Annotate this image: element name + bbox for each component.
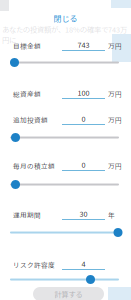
staticText: 毎月の積立額 [13, 161, 55, 171]
staticText: あなたの投資額が、18%の確率で743万円に [2, 24, 127, 45]
staticText: 年 [108, 210, 115, 220]
staticText: 万円 [108, 89, 122, 99]
staticText: 4 [81, 258, 85, 269]
button[interactable]: 計算する [33, 287, 104, 300]
button[interactable]: 閉じる [0, 11, 131, 25]
staticText: 運用期間 [13, 210, 41, 220]
staticText: 総資産額 [13, 89, 41, 99]
staticText: 100 [77, 87, 89, 98]
staticText: 閉じる [53, 12, 77, 24]
staticText: 目標金額 [13, 41, 41, 51]
staticText: 743 [77, 39, 89, 50]
staticText: リスク許容度 [13, 260, 55, 270]
staticText: 万円 [108, 41, 122, 51]
staticText: 30 [79, 208, 87, 219]
staticText: 0 [81, 113, 85, 124]
staticText: 万円 [108, 115, 122, 125]
staticText: 追加投資額 [13, 115, 48, 125]
staticText: 計算する [54, 289, 82, 299]
staticText: 万円 [108, 161, 122, 171]
staticText: 0 [81, 159, 85, 170]
